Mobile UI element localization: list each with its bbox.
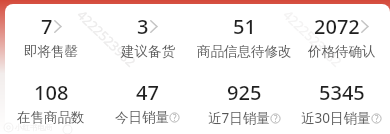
staticText: ? bbox=[274, 113, 278, 124]
staticText: 108 bbox=[34, 79, 69, 106]
staticText: 2072 bbox=[314, 13, 360, 40]
staticText: 4222523982 bbox=[279, 6, 346, 71]
other: 查看详情 bbox=[53, 20, 62, 33]
staticText: 即将售罄 bbox=[24, 43, 78, 60]
button[interactable]: 2072 bbox=[293, 13, 390, 60]
other: 查看详情 bbox=[149, 20, 158, 33]
staticText: 建议备货 bbox=[121, 43, 175, 60]
staticText: 7 bbox=[41, 13, 53, 40]
staticText: 价格待确认 bbox=[308, 43, 376, 60]
button[interactable]: 108 bbox=[3, 79, 99, 126]
button[interactable]: 51 bbox=[196, 13, 293, 60]
staticText: ? bbox=[173, 112, 177, 123]
staticText: 今日销量 bbox=[115, 109, 169, 126]
button[interactable]: 说明 bbox=[371, 113, 382, 124]
staticText: 近30日销量 bbox=[301, 109, 371, 127]
staticText: ? bbox=[375, 113, 379, 124]
button[interactable]: 说明 bbox=[270, 113, 281, 124]
button[interactable]: 3 bbox=[99, 13, 196, 60]
staticText: 近7日销量 bbox=[208, 109, 270, 127]
staticText: 在售商品数 bbox=[17, 109, 85, 126]
staticText: 4222523982 bbox=[73, 6, 140, 71]
button[interactable]: 47 bbox=[99, 79, 196, 126]
staticText: 925 bbox=[227, 79, 262, 106]
staticText: 商品信息待修改 bbox=[197, 43, 292, 60]
button[interactable]: 7 bbox=[3, 13, 99, 60]
button[interactable]: 说明 bbox=[169, 112, 180, 123]
button[interactable]: 5345 bbox=[293, 79, 390, 127]
staticText: 47 bbox=[136, 79, 159, 106]
other: 查看详情 bbox=[360, 20, 369, 33]
staticText: 3 bbox=[137, 13, 149, 40]
staticText: 5345 bbox=[319, 79, 365, 106]
staticText: 小红书电商 bbox=[15, 123, 53, 132]
button[interactable]: 925 bbox=[196, 79, 293, 127]
staticText: 51 bbox=[233, 13, 256, 40]
